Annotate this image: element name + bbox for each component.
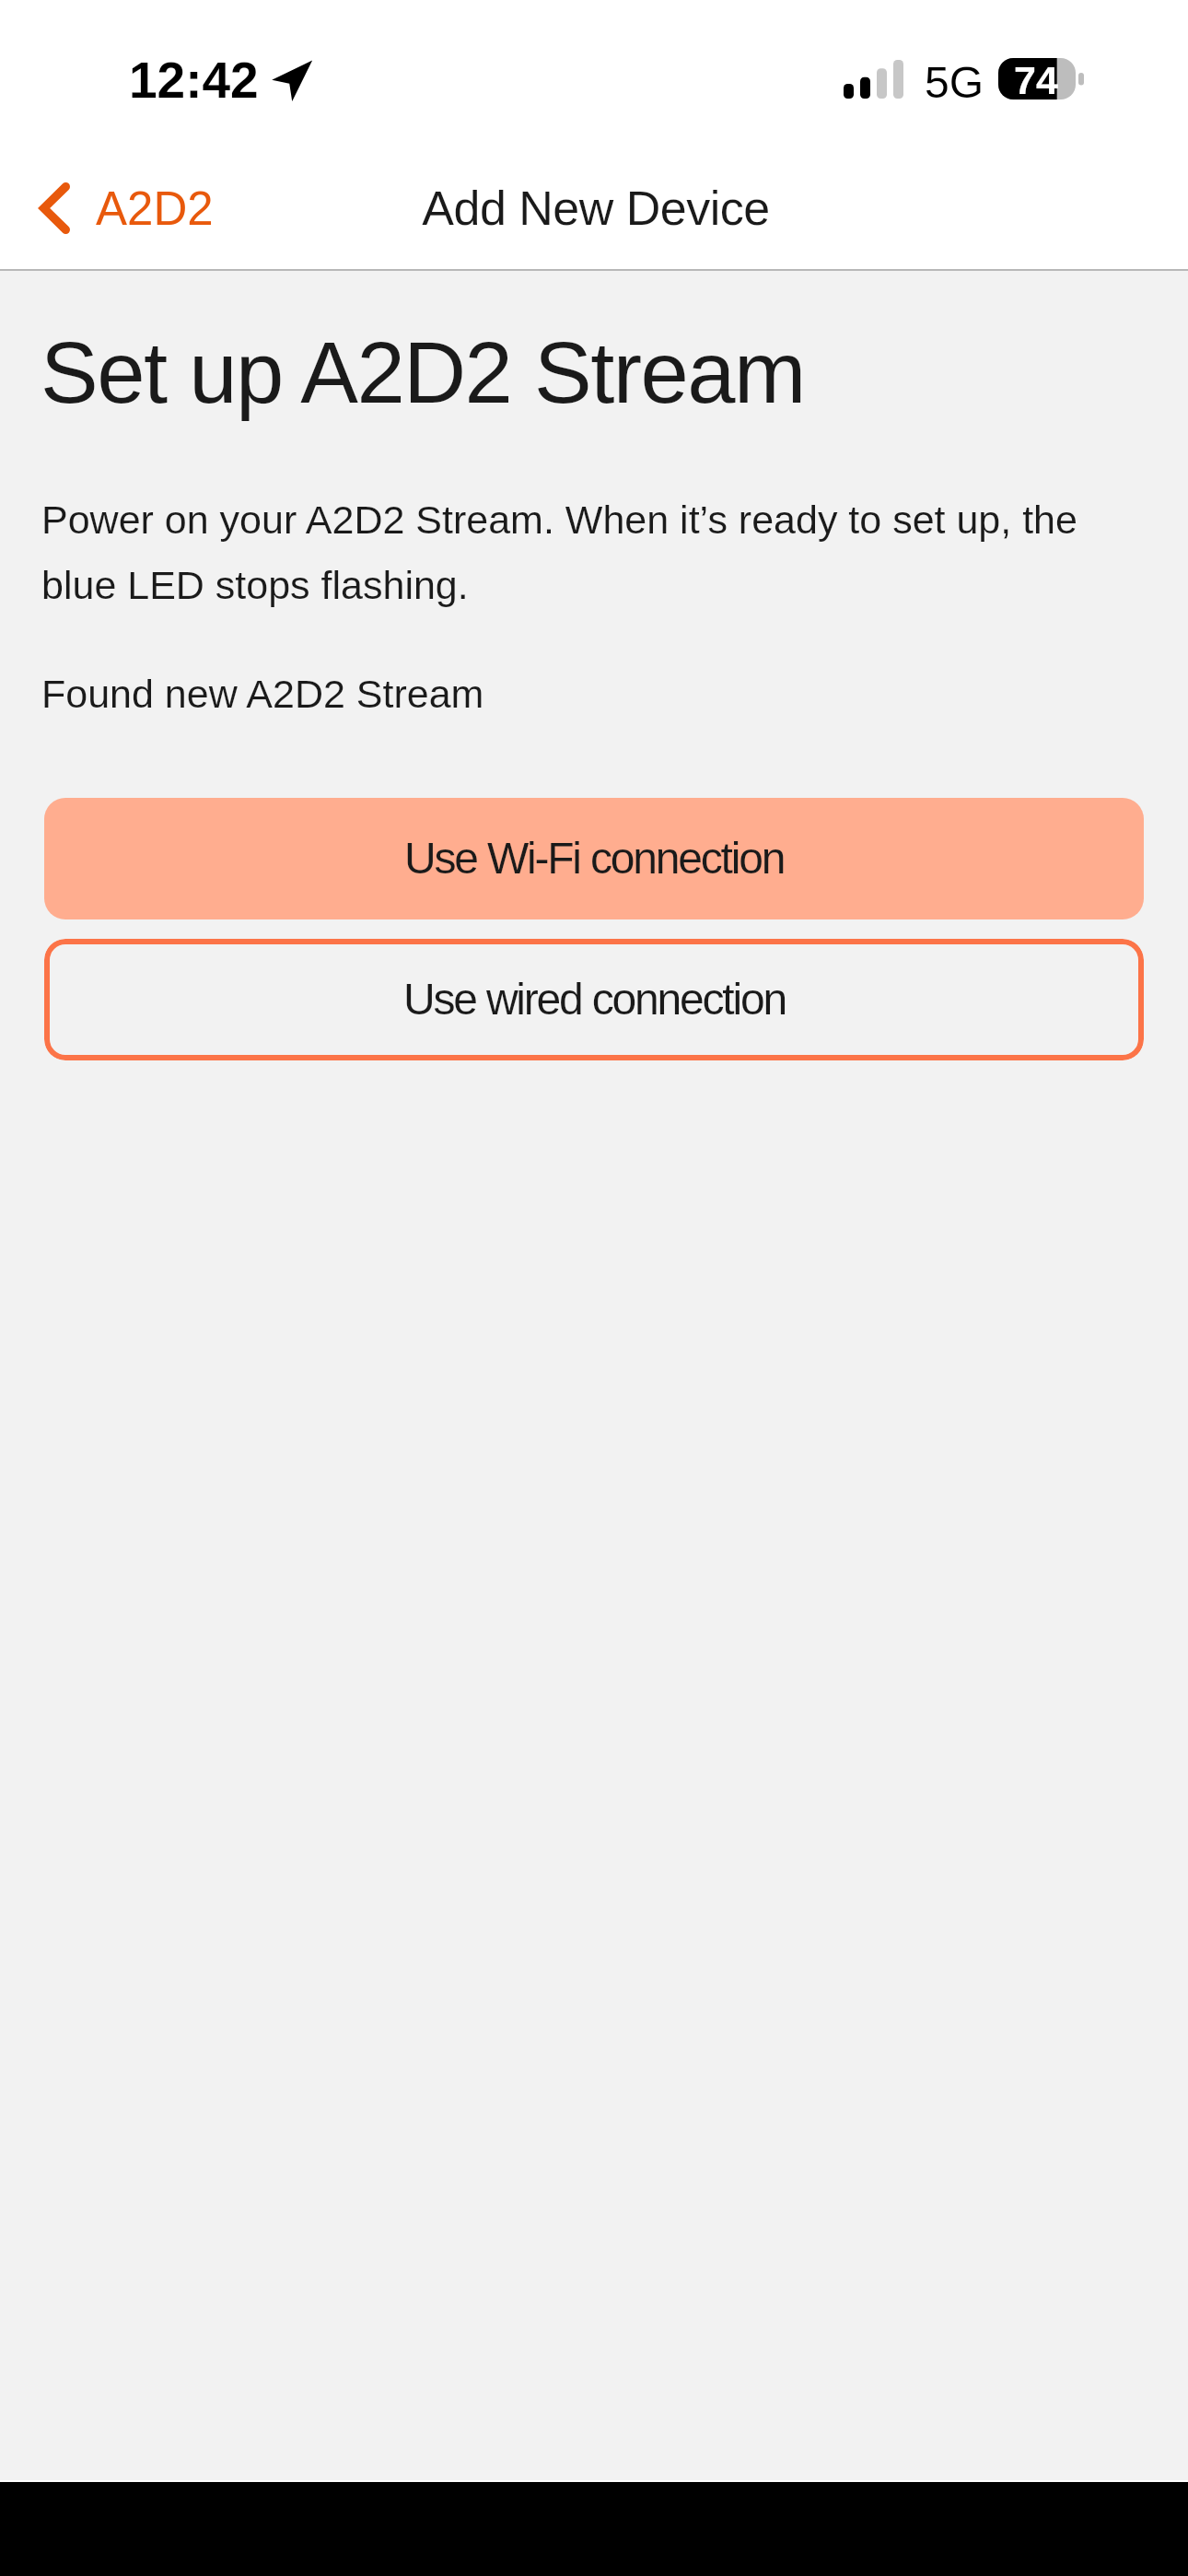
staticText: 5G [925,58,984,108]
button[interactable]: Use wired connection [44,939,1144,1060]
staticText: Power on your A2D2 Stream. When it’s rea… [41,498,1128,607]
staticText: 12:42 [129,52,259,108]
staticText: Set up A2D2 Stream [41,324,805,421]
staticText: 74 [1014,58,1058,100]
staticText: A2D2 [96,182,214,235]
button[interactable]: Use Wi‑Fi connection [44,798,1144,919]
other: Back [40,182,70,234]
staticText: Use Wi‑Fi connection [404,834,785,884]
staticText: Add New Device [422,181,770,235]
staticText: Found new A2D2 Stream [41,672,484,716]
button[interactable]: Back [40,166,214,251]
staticText: Use wired connection [403,975,786,1025]
